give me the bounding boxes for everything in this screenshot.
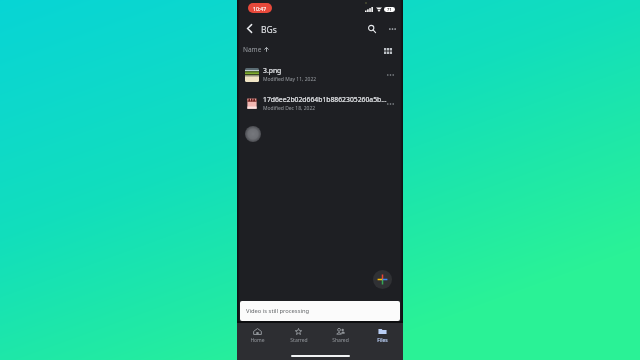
staticText: Files [377, 337, 388, 344]
button[interactable]: Starred [278, 321, 319, 360]
button[interactable]: Back [241, 20, 258, 37]
button[interactable]: Search [363, 20, 381, 38]
button[interactable]: More actions [382, 67, 398, 83]
staticText: Name [243, 45, 262, 54]
staticText: BGs [261, 24, 277, 36]
button[interactable]: Home [237, 321, 278, 360]
staticText: Shared [332, 337, 349, 344]
button[interactable]: More options [383, 20, 401, 38]
staticText: 71 [387, 7, 392, 12]
button[interactable]: More actions [382, 96, 398, 112]
staticText: Video is still processing [246, 307, 310, 315]
staticText: 10:47 [253, 5, 267, 12]
staticText: Modified Dec 18, 2022 [263, 105, 316, 112]
staticText: Home [250, 337, 265, 344]
button[interactable]: Name [241, 43, 271, 56]
button[interactable]: 17d6ee2b02d664b1b8862305260a5b… [237, 89, 403, 118]
button[interactable]: Create new [373, 270, 392, 289]
button[interactable]: Shared [319, 321, 361, 360]
button[interactable]: 3.png [237, 60, 403, 89]
button[interactable]: Files [361, 321, 403, 360]
staticText: 3.png [263, 66, 282, 75]
button[interactable]: Switch to grid view [380, 43, 396, 59]
staticText: Starred [290, 337, 308, 344]
staticText: 17d6ee2b02d664b1b8862305260a5b… [263, 95, 387, 104]
staticText: Modified May 11, 2022 [263, 76, 317, 83]
